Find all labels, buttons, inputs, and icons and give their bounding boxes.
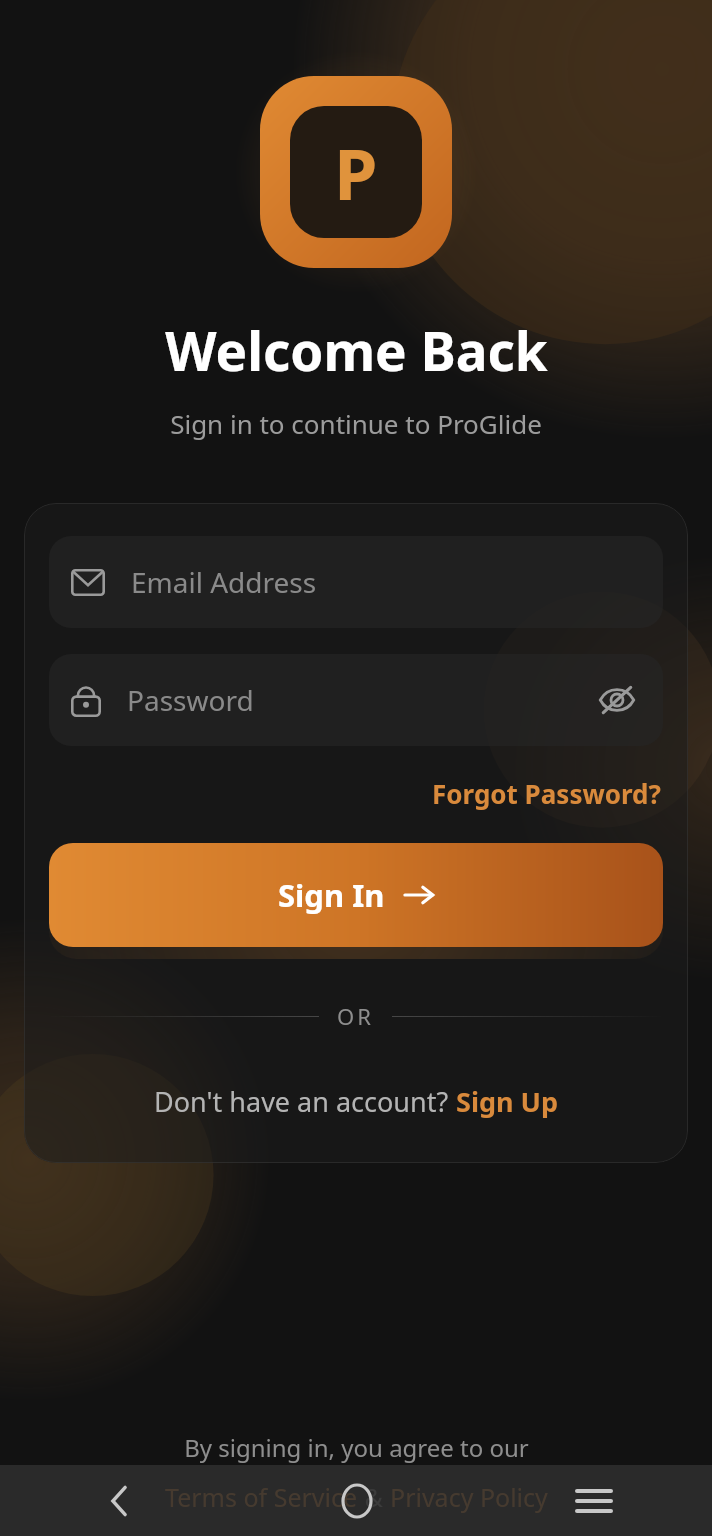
button[interactable]: Recent apps [475, 1465, 712, 1536]
button[interactable]: Terms of Service [161, 1480, 552, 1514]
button[interactable]: Forgot Password? [430, 772, 663, 815]
button[interactable]: Home [238, 1465, 475, 1536]
button[interactable]: Email Address [49, 536, 663, 628]
staticText: Sign Up [456, 1083, 559, 1120]
button[interactable]: Sign In [49, 843, 663, 947]
button[interactable]: Back [0, 1465, 238, 1536]
staticText: Privacy Policy [390, 1480, 548, 1514]
button[interactable]: Password [49, 654, 663, 746]
staticText: Sign in to continue to ProGlide [170, 406, 542, 441]
staticText: Sign In [278, 874, 385, 916]
button[interactable]: Show password [585, 668, 649, 732]
staticText: Don't have an account? [154, 1083, 456, 1120]
staticText: Terms of Service [165, 1480, 358, 1514]
staticText: OR [337, 1001, 374, 1031]
button[interactable]: Don't have an account? [150, 1079, 563, 1124]
staticText: By signing in, you agree to our [184, 1431, 529, 1464]
staticText: Password [127, 681, 254, 719]
staticText: Forgot Password? [432, 776, 661, 811]
staticText: P [334, 125, 378, 220]
staticText: Email Address [131, 563, 317, 601]
staticText: & [358, 1480, 390, 1514]
staticText: Welcome Back [165, 314, 548, 386]
